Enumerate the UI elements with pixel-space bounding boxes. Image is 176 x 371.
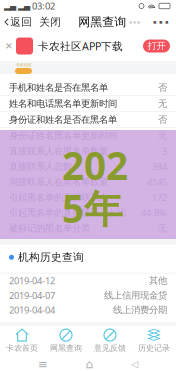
staticText: 直接联系人在黑名单数量 xyxy=(9,145,108,157)
staticText: 机构历史查询 xyxy=(18,251,84,264)
staticText: 身份证和姓名是否在黑名单 xyxy=(9,114,117,125)
staticText: 202 xyxy=(62,139,128,191)
staticText: 卡农社区 xyxy=(15,62,31,67)
button[interactable]: 历史记录 xyxy=(132,326,176,356)
staticText: 意见反馈 xyxy=(94,343,126,353)
staticText: 否 xyxy=(158,82,167,93)
staticText: ▂▄ xyxy=(18,1,30,11)
staticText: 卡农社区APP下载 xyxy=(38,39,123,53)
staticText: 其他 xyxy=(149,275,167,286)
button[interactable]: 卡农首页 xyxy=(0,326,44,356)
staticText: 172 xyxy=(152,191,167,203)
staticText: 网黑查询 xyxy=(50,343,82,353)
staticText: 引起黑名单的直接联系人占比 xyxy=(9,207,126,218)
staticText: 打开 xyxy=(147,40,165,52)
staticText: ▪ ▪ ▪ xyxy=(129,20,140,24)
staticText: 引起黑名单的直接联系人 xyxy=(9,192,108,203)
staticText: ▪ ▪ ▪ xyxy=(153,19,169,25)
button[interactable]: More xyxy=(149,13,173,31)
staticText: ▂▄ xyxy=(4,1,16,11)
button[interactable]: Close banner xyxy=(2,36,16,56)
staticText: 手机和姓名是否在黑名单 xyxy=(9,82,108,93)
button[interactable]: 网黑查询 xyxy=(44,326,88,356)
staticText: 返回 xyxy=(10,15,32,28)
staticText: 无 xyxy=(158,222,167,234)
staticText: 直接联系人总数 xyxy=(9,161,72,172)
staticText: ≡ xyxy=(38,357,48,371)
staticText: 2019-04-12 xyxy=(9,274,55,287)
staticText: 线上信用现金贷 xyxy=(104,290,167,301)
staticText: 网黑查询 xyxy=(78,15,126,29)
staticText: 被标记的黑名单分类 xyxy=(9,222,90,234)
staticText: 4145 xyxy=(147,176,167,188)
staticText: 间接联系人在黑名单数量 xyxy=(9,176,108,188)
staticText: 2019-04-07 xyxy=(9,289,55,301)
staticText: 否 xyxy=(158,114,167,125)
staticText: 身份证姓名黑名单更新时间 xyxy=(9,130,117,141)
staticText: 线上消费分期 xyxy=(113,304,167,316)
staticText: 历史记录 xyxy=(138,343,170,353)
staticText: 无 xyxy=(158,98,167,109)
button[interactable]: 返回 xyxy=(3,13,34,31)
button[interactable]: 打开 xyxy=(143,39,170,52)
staticText: 关闭 xyxy=(39,15,61,28)
staticText: 5年 xyxy=(62,182,123,234)
staticText: 44.8% xyxy=(141,206,167,219)
staticText: 卡农首页 xyxy=(6,343,38,353)
staticText: 姓名和电话黑名单更新时间 xyxy=(9,98,117,109)
staticText: ✕ xyxy=(5,41,13,51)
staticText: ◁ xyxy=(131,359,138,369)
staticText: 3 xyxy=(162,145,167,157)
staticText: 无 xyxy=(158,130,167,141)
staticText: 03:02 xyxy=(30,0,55,12)
staticText: ⌂ xyxy=(85,357,93,371)
staticText xyxy=(16,1,18,11)
button[interactable]: 关闭 xyxy=(37,13,63,31)
staticText: 2019-04-04 xyxy=(9,304,55,316)
staticText: 384 xyxy=(152,160,167,173)
button[interactable]: 意见反馈 xyxy=(88,326,132,356)
